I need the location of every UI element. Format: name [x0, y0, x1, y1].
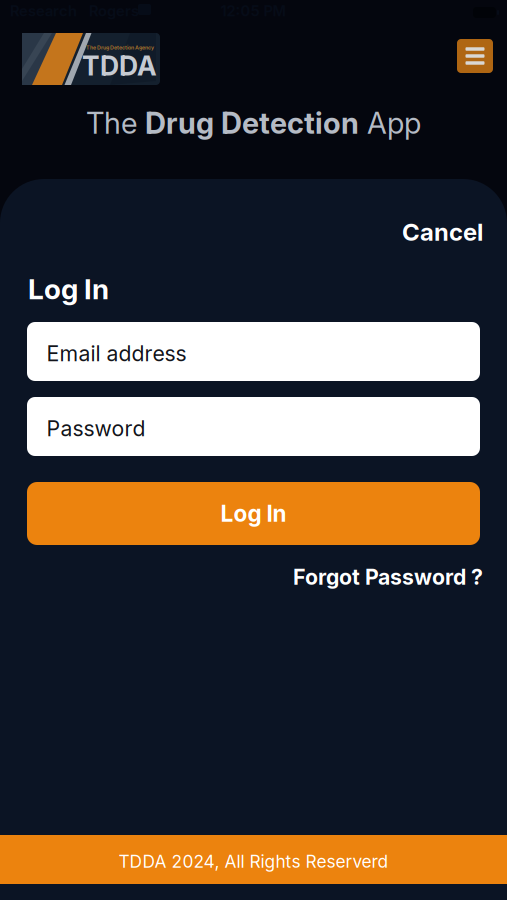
staticText: Forgot Password ?	[293, 564, 483, 590]
staticText: Password	[46, 416, 145, 441]
staticText: 12:05 PM	[220, 2, 286, 20]
staticText: Drug Detection	[145, 106, 359, 140]
button[interactable]: Log In	[27, 482, 480, 545]
button[interactable]: Forgot Password ?	[293, 564, 483, 590]
staticText: Cancel	[402, 218, 483, 246]
staticText: The	[86, 106, 145, 140]
staticText: Log In	[28, 272, 109, 305]
staticText: Research Rogers	[10, 2, 139, 20]
button[interactable]	[457, 39, 493, 73]
staticText: App	[359, 106, 421, 140]
staticText: Email address	[46, 341, 186, 366]
staticText: Log In	[220, 500, 286, 527]
staticText: The Drug Detection Agency	[86, 44, 154, 51]
staticText: TDDA	[82, 50, 157, 81]
button[interactable]: Password	[27, 397, 480, 456]
button[interactable]: Cancel	[402, 218, 483, 246]
staticText: TDDA 2024, All Rights Reserverd	[118, 851, 388, 872]
button[interactable]: Email address	[27, 322, 480, 381]
